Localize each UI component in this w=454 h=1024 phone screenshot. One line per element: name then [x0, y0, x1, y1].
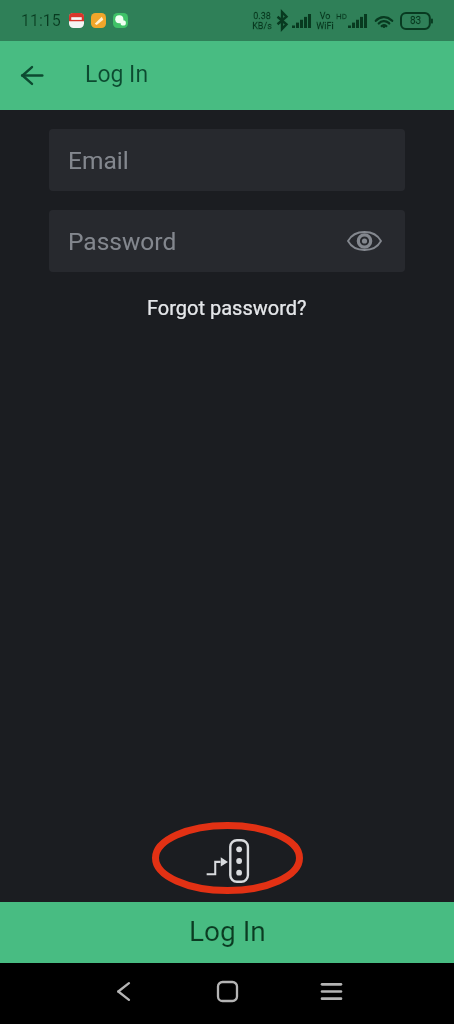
button[interactable]: Recents: [306, 966, 356, 1016]
staticText: Password: [68, 227, 177, 256]
button[interactable]: Home: [202, 966, 252, 1016]
button[interactable]: Email: [49, 129, 405, 191]
button[interactable]: Back: [0, 41, 64, 110]
button[interactable]: Back: [98, 966, 148, 1016]
staticText: 11:15: [21, 11, 61, 30]
staticText: Forgot password?: [147, 296, 307, 319]
button[interactable]: Show password: [344, 221, 384, 261]
staticText: Email: [68, 146, 129, 175]
staticText: Log In: [189, 915, 266, 948]
staticText: 0.38 KB/s: [252, 11, 272, 31]
staticText: 83: [410, 15, 422, 27]
button[interactable]: Log In: [0, 902, 454, 963]
staticText: Vo WiFi: [316, 11, 334, 31]
staticText: HD: [336, 12, 347, 21]
staticText: Log In: [85, 61, 149, 88]
button[interactable]: Password: [49, 210, 405, 272]
button[interactable]: Forgot password?: [137, 292, 317, 323]
